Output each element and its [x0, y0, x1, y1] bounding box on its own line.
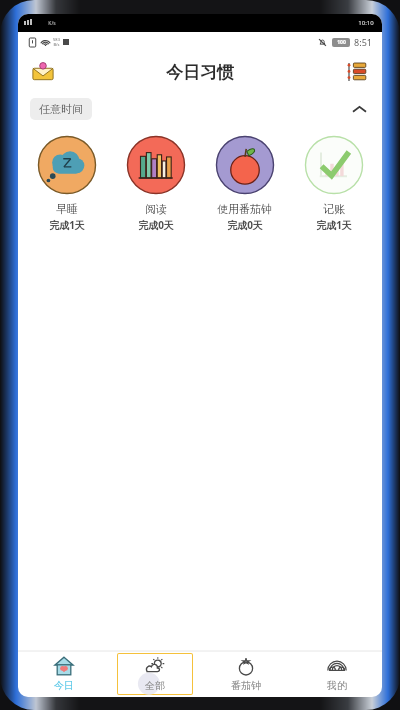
button[interactable]: 记账	[289, 132, 378, 234]
button[interactable]: 使用番茄钟	[200, 132, 289, 234]
staticText: 阅读	[145, 202, 167, 216]
staticText: B/s	[53, 42, 60, 47]
button[interactable]: Collapse	[346, 96, 372, 122]
button[interactable]: 今日	[26, 653, 102, 695]
staticText: 番茄钟	[231, 679, 261, 692]
button[interactable]: Filter	[340, 55, 374, 89]
staticText: 任意时间	[39, 102, 83, 116]
staticText: 今日	[54, 679, 74, 692]
staticText: 完成1天	[316, 218, 352, 232]
staticText: K/s	[48, 20, 56, 27]
staticText: 全部	[145, 679, 165, 692]
staticText: 583	[53, 37, 60, 42]
staticText: 完成0天	[227, 218, 263, 232]
staticText: 早睡	[56, 202, 78, 216]
staticText: 使用番茄钟	[217, 202, 272, 216]
staticText: 今日习惯	[166, 62, 234, 83]
staticText: 我的	[327, 679, 347, 692]
staticText: 8:51	[354, 36, 372, 48]
button[interactable]: 阅读	[111, 132, 200, 234]
button[interactable]: 任意时间	[30, 98, 92, 120]
staticText: 完成1天	[49, 218, 85, 232]
button[interactable]: 我的	[299, 653, 375, 695]
button[interactable]: Messages	[26, 55, 60, 89]
button[interactable]: 全部	[117, 653, 193, 695]
staticText: 10:10	[358, 19, 374, 27]
button[interactable]: 番茄钟	[208, 653, 284, 695]
staticText: 完成0天	[138, 218, 174, 232]
button[interactable]: 早睡	[22, 132, 111, 234]
staticText: 100	[337, 39, 346, 46]
staticText: 记账	[323, 202, 345, 216]
